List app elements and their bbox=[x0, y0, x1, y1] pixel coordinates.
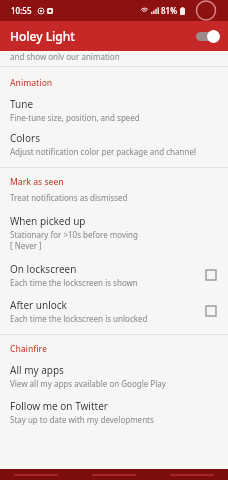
staticText: After unlock bbox=[10, 298, 67, 312]
button[interactable]: After unlock bbox=[0, 293, 228, 329]
staticText: and show only our animation bbox=[10, 51, 120, 60]
staticText: Each time the lockscreen is unlocked bbox=[10, 313, 148, 324]
button[interactable]: Treat notifications as dismissed bbox=[0, 192, 228, 206]
staticText: 81% bbox=[161, 5, 177, 16]
staticText: Follow me on Twitter bbox=[10, 399, 108, 413]
button[interactable]: When picked up bbox=[0, 210, 228, 255]
staticText: On lockscreen bbox=[10, 262, 77, 276]
staticText: Stationary for >10s before moving [ Neve… bbox=[10, 229, 138, 251]
staticText: Adjust notification color per package an… bbox=[10, 146, 197, 157]
staticText: Mark as seen bbox=[10, 176, 64, 188]
button[interactable]: Follow me on Twitter bbox=[0, 395, 228, 429]
button[interactable]: On lockscreen bbox=[0, 257, 228, 293]
button[interactable]: Tune bbox=[0, 93, 228, 127]
staticText: View all my apps available on Google Pla… bbox=[10, 378, 166, 389]
staticText: Each time the lockscreen is shown bbox=[10, 277, 138, 288]
button[interactable]: Colors bbox=[0, 127, 228, 161]
staticText: 10:55 bbox=[11, 5, 32, 16]
staticText: Chainfire bbox=[10, 343, 47, 355]
staticText: Tune bbox=[10, 97, 34, 111]
button[interactable]: and show only our animation bbox=[0, 51, 228, 61]
staticText: When picked up bbox=[10, 214, 86, 228]
staticText: Treat notifications as dismissed bbox=[10, 192, 128, 203]
staticText: Animation bbox=[10, 77, 53, 89]
button[interactable]: Toggle Holey Light bbox=[194, 27, 220, 45]
button[interactable]: All my apps bbox=[0, 359, 228, 393]
staticText: Fine-tune size, position, and speed bbox=[10, 112, 140, 123]
staticText: Stay up to date with my developments bbox=[10, 414, 154, 425]
staticText: Colors bbox=[10, 131, 40, 145]
staticText: All my apps bbox=[10, 363, 64, 377]
staticText: Holey Light bbox=[10, 28, 75, 44]
